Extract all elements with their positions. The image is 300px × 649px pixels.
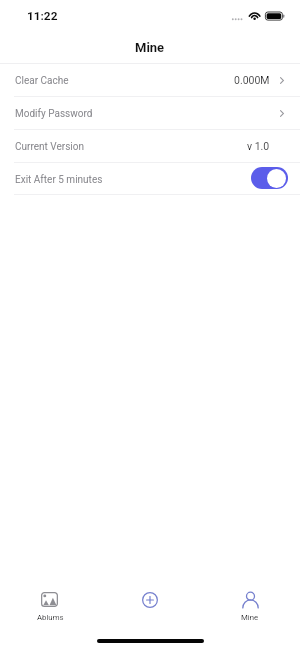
staticText: Modify Password xyxy=(15,108,93,120)
staticText: Mine xyxy=(241,613,259,622)
staticText: 0.000M xyxy=(234,74,270,86)
staticText: Current Version xyxy=(15,141,84,153)
staticText: v 1.0 xyxy=(247,140,270,152)
button[interactable]: Ablums xyxy=(0,582,100,630)
button[interactable]: Modify Password xyxy=(0,97,300,129)
staticText: Exit After 5 minutes xyxy=(15,174,103,186)
staticText: Ablums xyxy=(37,613,64,622)
button[interactable]: Add xyxy=(100,582,200,630)
button[interactable]: Current Version xyxy=(0,130,300,162)
staticText: Mine xyxy=(135,40,165,55)
staticText: 11:22 xyxy=(27,9,58,23)
button[interactable]: Exit after 5 minutes toggle xyxy=(251,167,288,189)
button[interactable]: Clear Cache xyxy=(0,64,300,96)
staticText: Clear Cache xyxy=(15,75,69,87)
button[interactable]: Exit After 5 minutes xyxy=(0,163,300,194)
button[interactable]: Mine xyxy=(200,582,300,630)
